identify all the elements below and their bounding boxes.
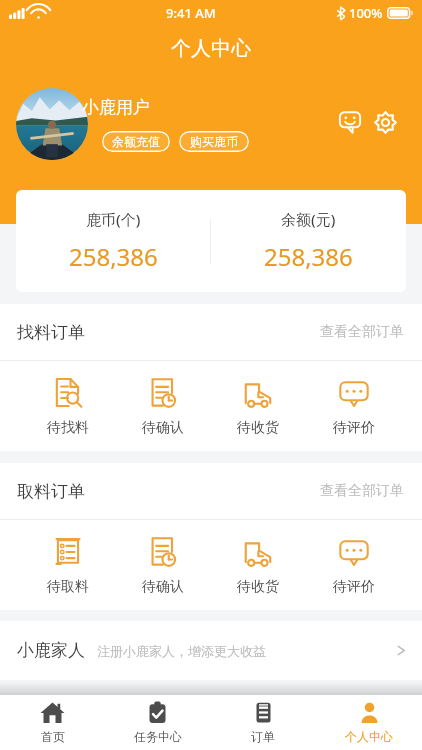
staticText: 9:41 AM: [166, 4, 216, 22]
staticText: 鹿币(个): [86, 209, 141, 229]
staticText: 待收货: [237, 419, 279, 437]
staticText: 待取料: [47, 578, 89, 596]
staticText: 待收货: [237, 578, 279, 596]
staticText: 查看全部订单: [320, 482, 404, 500]
staticText: 任务中心: [134, 729, 182, 744]
button[interactable]: 待收货: [210, 375, 306, 437]
button[interactable]: 待找料: [20, 375, 115, 437]
staticText: 首页: [41, 729, 65, 744]
staticText: 258,386: [264, 240, 353, 273]
staticText: 购买鹿币: [190, 134, 238, 149]
staticText: 注册小鹿家人，增添更大收益: [97, 643, 266, 659]
button[interactable]: 首页: [0, 695, 105, 750]
button[interactable]: 个人中心: [316, 695, 422, 750]
button[interactable]: 任务中心: [105, 695, 210, 750]
staticText: 待评价: [333, 578, 375, 596]
button[interactable]: 待确认: [115, 375, 210, 437]
button[interactable]: 查看全部订单: [320, 323, 404, 341]
button[interactable]: 小鹿家人: [0, 621, 422, 680]
button[interactable]: 待取料: [20, 534, 115, 596]
staticText: 余额(元): [281, 209, 336, 229]
button[interactable]: 余额充值: [102, 131, 170, 152]
staticText: 待确认: [142, 419, 184, 437]
button[interactable]: 余额(元): [211, 209, 406, 273]
button[interactable]: Messages: [339, 111, 361, 133]
staticText: 待找料: [47, 419, 89, 437]
button[interactable]: 订单: [210, 695, 316, 750]
button[interactable]: Settings: [374, 111, 397, 134]
button[interactable]: 购买鹿币: [179, 131, 249, 152]
staticText: 个人中心: [345, 729, 393, 744]
staticText: 100%: [349, 4, 383, 22]
button[interactable]: Profile photo: [16, 88, 88, 160]
staticText: 查看全部订单: [320, 323, 404, 341]
button[interactable]: 查看全部订单: [320, 482, 404, 500]
staticText: 待确认: [142, 578, 184, 596]
staticText: 个人中心: [171, 36, 251, 61]
staticText: 找料订单: [17, 322, 85, 343]
button[interactable]: 待收货: [210, 534, 306, 596]
staticText: 小鹿用户: [82, 97, 150, 118]
staticText: 小鹿家人: [17, 640, 85, 661]
button[interactable]: 鹿币(个): [16, 209, 210, 273]
staticText: 订单: [251, 729, 275, 744]
staticText: 余额充值: [112, 134, 160, 149]
staticText: 待评价: [333, 419, 375, 437]
button[interactable]: 待评价: [306, 534, 402, 596]
staticText: 取料订单: [17, 481, 85, 502]
button[interactable]: 待确认: [115, 534, 210, 596]
button[interactable]: 待评价: [306, 375, 402, 437]
staticText: 258,386: [69, 240, 158, 273]
